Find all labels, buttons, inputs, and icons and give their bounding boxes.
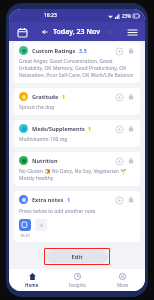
staticText: 1 — [67, 196, 71, 203]
button[interactable]: Gratitude — [14, 88, 140, 115]
staticText: Sprout the dog — [19, 104, 55, 111]
staticText: Multivitamin 100 mg — [19, 136, 68, 143]
button[interactable]: Add — [115, 157, 123, 165]
button[interactable]: Home — [9, 269, 55, 291]
button[interactable]: Add — [115, 93, 123, 101]
button[interactable]: Delete — [127, 196, 135, 204]
button[interactable]: Edit — [46, 250, 108, 263]
button[interactable]: Delete — [127, 125, 135, 133]
button[interactable]: Add — [115, 125, 123, 133]
button[interactable]: Extra notes — [14, 191, 140, 242]
button[interactable]: Open note — [19, 219, 31, 231]
button[interactable]: Meds/Supplements — [14, 120, 140, 147]
staticText: Today, 23 Nov — [53, 27, 101, 37]
button[interactable]: Nutrition — [14, 152, 140, 186]
button[interactable]: Previous day — [40, 27, 50, 37]
button[interactable]: Next day — [104, 27, 114, 37]
button[interactable]: Delete — [127, 47, 135, 55]
staticText: Nutrition — [32, 157, 58, 164]
button[interactable]: Delete — [127, 93, 135, 101]
staticText: 1 — [62, 93, 66, 100]
staticText: Custom Ratings — [32, 47, 76, 54]
button[interactable]: More — [100, 269, 145, 291]
staticText: Edit — [71, 253, 83, 261]
button[interactable]: Add — [115, 196, 123, 204]
button[interactable]: Add — [115, 47, 123, 55]
button[interactable]: Insights — [55, 269, 100, 291]
button[interactable]: Calendar — [14, 24, 30, 40]
staticText: Meds/Supplements — [32, 125, 85, 132]
staticText: 16:23 — [44, 12, 57, 19]
button[interactable]: Custom Ratings — [14, 42, 140, 83]
staticText: Great Anger, Good Concentration, Great I… — [19, 58, 135, 79]
staticText: Extra notes — [32, 196, 64, 203]
staticText: 23% — [122, 13, 131, 19]
staticText: 3.5 — [79, 47, 87, 54]
button[interactable]: Menu — [124, 24, 140, 40]
staticText: Insights — [69, 282, 86, 288]
staticText: Gratitude — [32, 93, 59, 100]
staticText: No Gluten 🍞 No Dairy, No Soy, Vegetarian… — [19, 168, 135, 182]
staticText: Press below to add another note — [19, 208, 96, 215]
button[interactable]: Add note — [35, 219, 47, 231]
staticText: 16:21 — [20, 233, 31, 238]
staticText: 1 — [88, 125, 92, 132]
staticText: More — [117, 282, 129, 288]
button[interactable]: Delete — [127, 157, 135, 165]
staticText: Home — [25, 282, 39, 288]
